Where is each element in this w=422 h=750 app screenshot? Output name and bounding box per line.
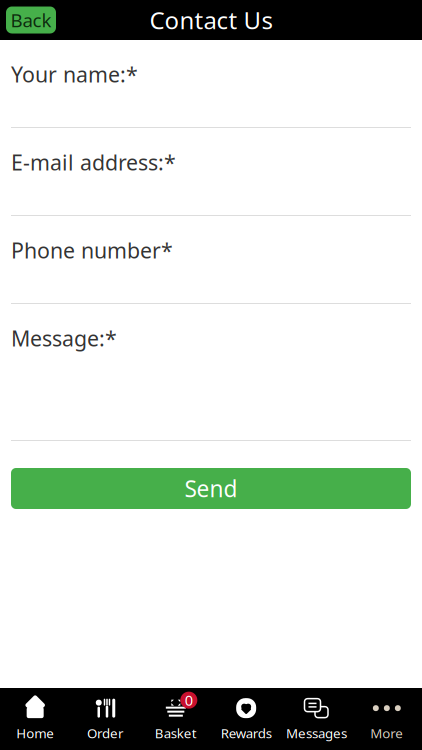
staticText: 0 — [185, 690, 193, 710]
button[interactable]: Order — [70, 688, 141, 750]
staticText: Home — [16, 724, 54, 742]
staticText: Contact Us — [149, 4, 272, 36]
button[interactable]: Messages — [281, 688, 352, 750]
button[interactable]: Back — [6, 6, 56, 33]
staticText: Your name:* — [11, 60, 138, 88]
staticText: E-mail address:* — [11, 148, 176, 176]
staticText: Back — [10, 8, 51, 32]
staticText: Basket — [155, 724, 197, 742]
button[interactable]: 0 — [141, 688, 211, 750]
staticText: More — [370, 724, 403, 742]
staticText: Messages — [286, 724, 347, 742]
button[interactable]: More — [352, 688, 422, 750]
button[interactable]: Home — [0, 688, 70, 750]
staticText: Send — [184, 473, 237, 503]
staticText: Rewards — [221, 724, 272, 742]
staticText: Order — [87, 724, 124, 742]
staticText: Message:* — [11, 324, 117, 352]
staticText: Phone number* — [11, 236, 173, 264]
button[interactable]: Rewards — [211, 688, 281, 750]
button[interactable]: Send — [11, 468, 411, 509]
